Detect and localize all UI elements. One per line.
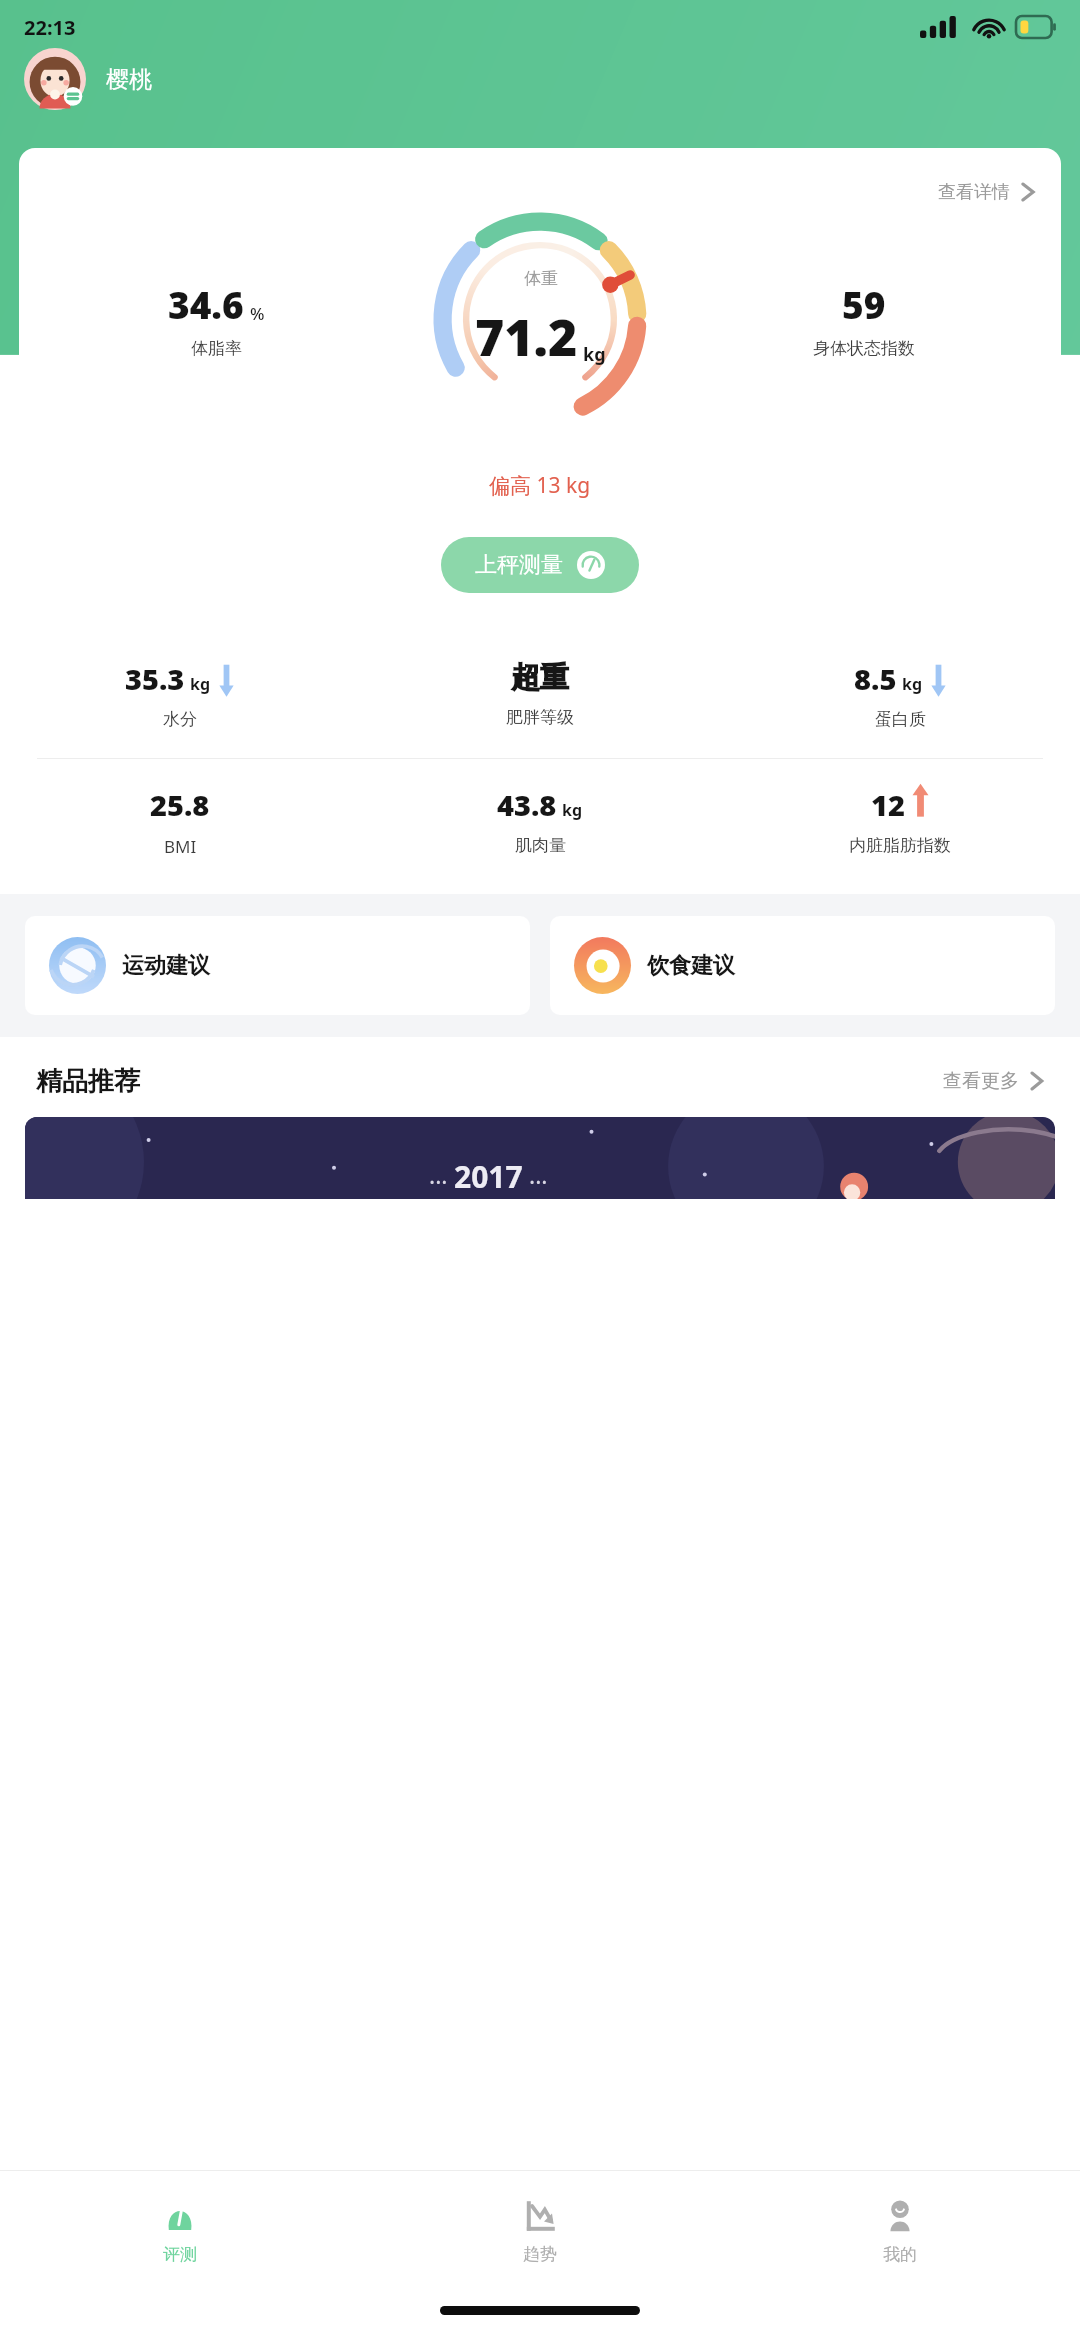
staticText: 身体状态指数 [813,338,915,359]
staticText: 43.8 [497,785,557,824]
staticText: 查看详情 [938,181,1010,204]
button[interactable]: 上秤测量 [441,537,639,593]
staticText: 59 [842,279,886,329]
button[interactable]: 查看详情 [932,174,1042,210]
staticText: 内脏脂肪指数 [849,835,951,856]
staticText: 25.8 [150,785,210,824]
staticText: 查看更多 [943,1069,1019,1093]
staticText: 71.2 [475,303,578,371]
staticText: 偏高 13 kg [489,471,591,500]
staticText: 评测 [163,2244,197,2265]
button[interactable]: ··· [25,1117,1055,1199]
staticText: kg [583,342,606,367]
staticText: 上秤测量 [475,551,563,579]
button[interactable]: 饮食建议 [550,916,1055,1015]
staticText: 超重 [511,659,569,696]
button[interactable]: Profile [24,48,86,110]
staticText: 35.3 [125,659,185,698]
staticText: kg [190,673,211,695]
staticText: BMI [164,835,197,858]
button[interactable]: 评测 [0,2171,360,2289]
staticText: 体脂率 [191,338,242,359]
staticText: 2017 [454,1156,523,1197]
staticText: 我的 [883,2244,917,2265]
button[interactable]: 运动建议 [25,916,530,1015]
staticText: 水分 [163,709,197,730]
staticText: kg [562,799,583,821]
staticText: 肌肉量 [515,835,566,856]
staticText: % [250,302,265,325]
staticText: 8.5 [854,659,897,698]
staticText: 樱桃 [106,65,152,94]
staticText: 饮食建议 [647,952,735,980]
staticText: ··· [523,1166,548,1197]
staticText: 运动建议 [122,952,210,980]
staticText: 12 [871,785,905,824]
staticText: 22:13 [24,14,76,41]
staticText: 34.6 [168,279,244,329]
staticText: ··· [429,1166,454,1197]
button[interactable]: 我的 [720,2171,1080,2289]
staticText: 肥胖等级 [506,707,574,728]
staticText: 趋势 [523,2244,557,2265]
button[interactable]: 查看更多 [937,1063,1050,1099]
staticText: kg [902,673,923,695]
staticText: 精品推荐 [36,1065,140,1098]
staticText: 蛋白质 [875,709,926,730]
button[interactable]: 趋势 [360,2171,720,2289]
staticText: 体重 [524,268,558,289]
